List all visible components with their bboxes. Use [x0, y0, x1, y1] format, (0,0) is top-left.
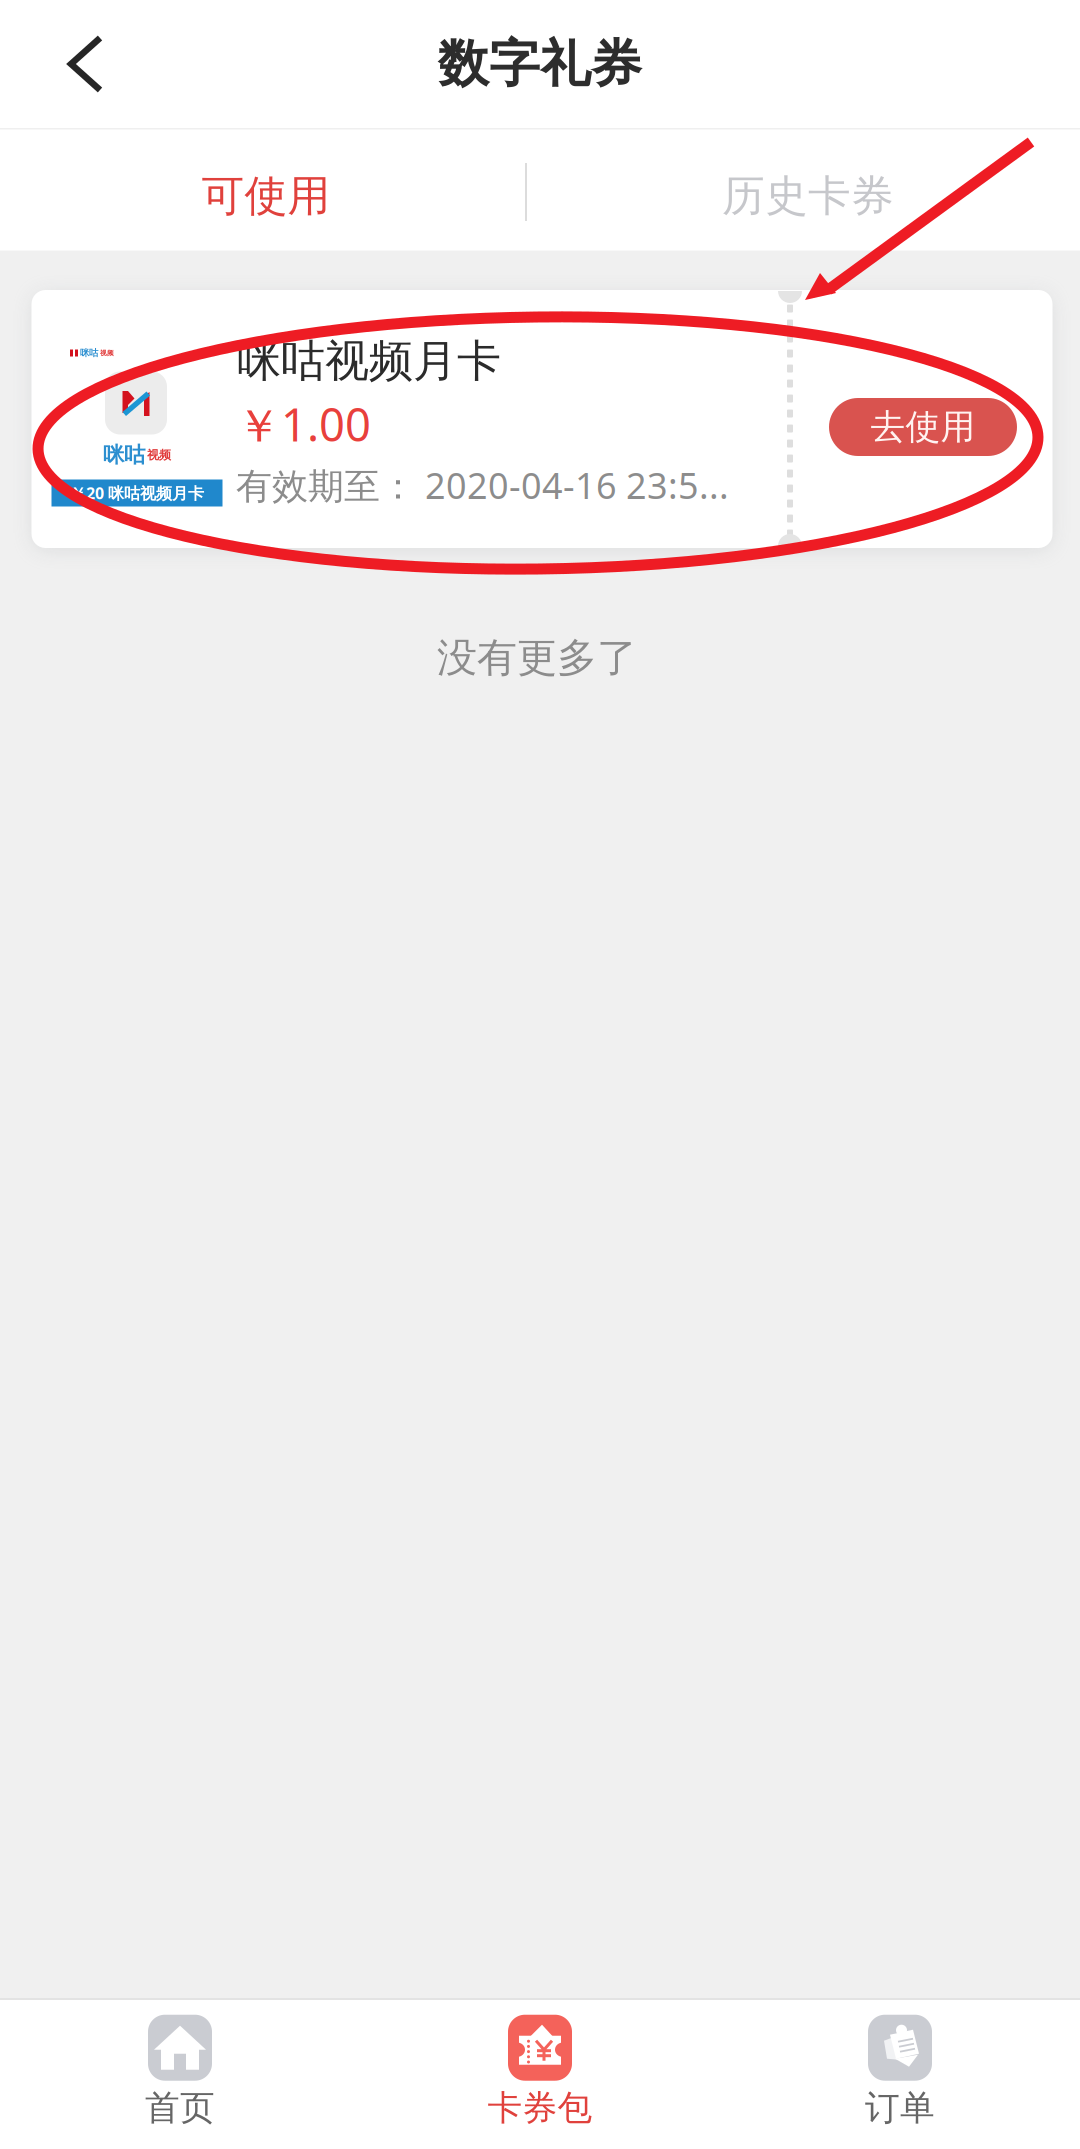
button[interactable]: 返回 [21, 0, 151, 128]
staticText: 视频 [147, 448, 171, 462]
staticText: 卡券包 [487, 2087, 592, 2129]
button[interactable]: 订单 [720, 2007, 1080, 2137]
button[interactable]: 去使用 [829, 398, 1017, 456]
staticText: 去使用 [870, 406, 975, 448]
button[interactable]: 首页 [0, 2007, 360, 2137]
staticText: 咪咕 [80, 347, 98, 359]
staticText: ￥20 咪咕视频月卡 [70, 482, 204, 504]
staticText: 咪咕 [103, 442, 145, 468]
staticText: 有效期至： 2020-04-16 23:5... [236, 461, 729, 509]
staticText: 数字礼券 [438, 33, 642, 95]
staticText: 咪咕视频月卡 [237, 334, 501, 388]
staticText: 没有更多了 [437, 633, 637, 682]
staticText: 历史卡券 [722, 170, 894, 222]
button[interactable]: 卡券包 [360, 2007, 720, 2137]
staticText: ￥1.00 [236, 394, 371, 454]
button[interactable]: 可使用 [31, 135, 501, 256]
staticText: 可使用 [201, 170, 330, 222]
staticText: 首页 [145, 2087, 215, 2129]
button[interactable]: 历史卡券 [573, 135, 1043, 256]
staticText: 订单 [865, 2087, 935, 2129]
staticText: 视频 [100, 349, 114, 357]
